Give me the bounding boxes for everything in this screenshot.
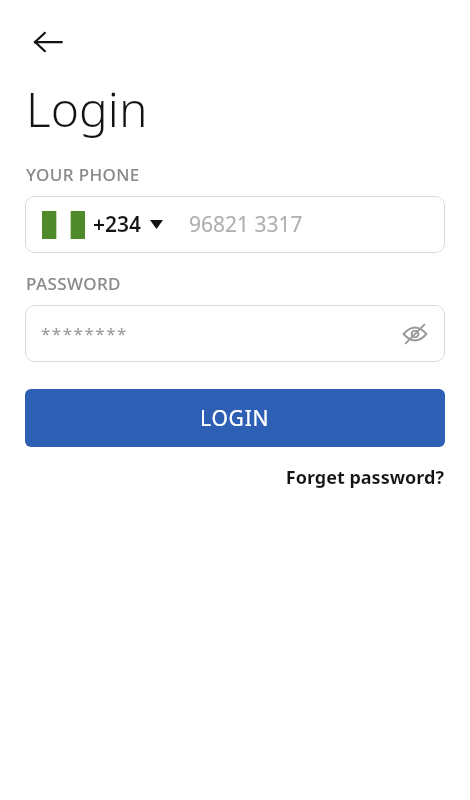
staticText: 96821 3317	[189, 210, 303, 239]
button[interactable]: +234	[25, 196, 445, 253]
staticText: +234	[93, 210, 142, 239]
button[interactable]: ********	[25, 305, 445, 362]
staticText: LOGIN	[200, 404, 270, 433]
button[interactable]: LOGIN	[25, 389, 445, 447]
button[interactable]: Back	[22, 16, 74, 68]
staticText: YOUR PHONE	[26, 163, 140, 186]
button[interactable]: Forget password?	[281, 461, 448, 494]
staticText: Login	[26, 76, 148, 141]
button[interactable]: Show password	[397, 316, 433, 352]
staticText: Forget password?	[285, 465, 444, 490]
staticText: PASSWORD	[26, 272, 121, 295]
staticText: ********	[41, 322, 128, 345]
